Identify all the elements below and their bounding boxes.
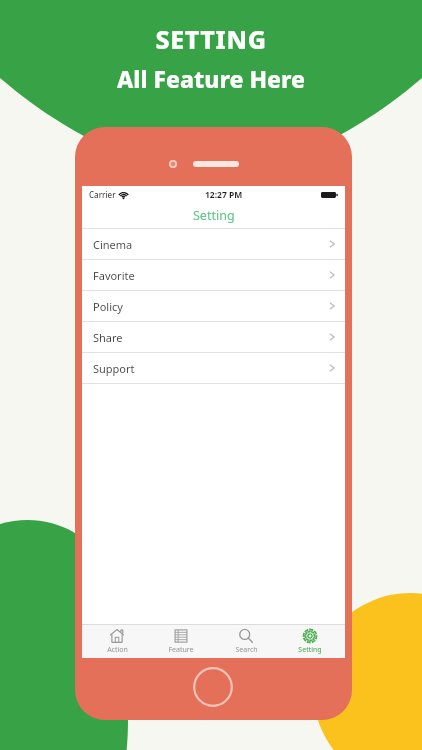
other: Home button bbox=[193, 667, 233, 707]
staticText: Setting bbox=[298, 645, 322, 655]
button[interactable]: Share bbox=[82, 322, 345, 352]
staticText: Policy bbox=[93, 299, 123, 314]
staticText: Share bbox=[93, 330, 123, 345]
staticText: Feature bbox=[168, 645, 194, 655]
staticText: Support bbox=[93, 361, 135, 376]
button[interactable]: Feature bbox=[152, 625, 210, 658]
staticText: SETTING bbox=[155, 22, 267, 56]
button[interactable]: Search bbox=[217, 625, 275, 658]
staticText: Setting bbox=[193, 207, 235, 224]
staticText: Carrier bbox=[89, 189, 116, 200]
staticText: Cinema bbox=[93, 237, 133, 252]
button[interactable]: Action bbox=[88, 625, 146, 658]
button[interactable]: Cinema bbox=[82, 229, 345, 259]
staticText: Search bbox=[235, 645, 258, 655]
staticText: Action bbox=[107, 645, 128, 655]
button[interactable]: Policy bbox=[82, 291, 345, 321]
staticText: All Feature Here bbox=[117, 63, 305, 94]
staticText: 12:27 PM bbox=[205, 189, 243, 201]
button[interactable]: Support bbox=[82, 353, 345, 383]
button[interactable]: Favorite bbox=[82, 260, 345, 290]
staticText: Favorite bbox=[93, 268, 135, 283]
button[interactable]: Setting bbox=[281, 625, 339, 658]
